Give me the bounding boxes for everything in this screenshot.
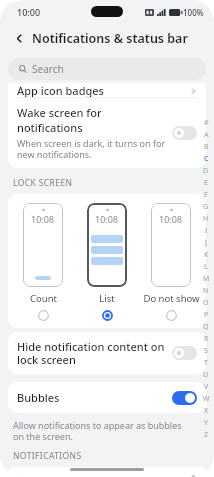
button[interactable]: Bubbles	[8, 382, 206, 413]
button[interactable]: 10:08	[78, 203, 136, 322]
staticText: M	[203, 274, 210, 284]
staticText: List	[99, 292, 115, 305]
staticText: Notifications & status bar	[32, 30, 188, 47]
staticText: F	[204, 190, 208, 200]
staticText: D	[203, 166, 209, 176]
staticText: G	[203, 202, 209, 212]
staticText: 10:08	[159, 213, 183, 225]
staticText: When screen is dark, it turns on for new…	[17, 137, 166, 160]
button[interactable]: Back	[10, 29, 28, 47]
staticText: App icon badges	[17, 83, 104, 97]
staticText: A	[204, 130, 209, 140]
staticText: O	[203, 298, 209, 308]
staticText: B	[204, 142, 209, 152]
button[interactable]: Alphabet index	[201, 117, 211, 441]
staticText: 10:08	[31, 213, 55, 225]
staticText: 10:00	[17, 6, 41, 18]
staticText: K	[204, 250, 209, 260]
staticText: U	[203, 370, 209, 380]
button[interactable]: Hide notification content on lock screen	[8, 332, 206, 374]
staticText: LOCK SCREEN	[13, 177, 73, 189]
staticText: Y	[204, 418, 208, 428]
button[interactable]: Search	[8, 58, 206, 80]
staticText: Hide notification content on lock screen	[17, 339, 166, 367]
staticText: #	[204, 118, 209, 128]
staticText: L	[204, 262, 208, 272]
staticText: P	[204, 310, 209, 320]
staticText: Wake screen for notifications	[17, 105, 166, 135]
staticText: 100%	[183, 7, 204, 18]
staticText: Q	[203, 322, 209, 332]
staticText: X	[204, 406, 209, 416]
button[interactable]: Toggle on	[172, 391, 197, 405]
staticText: J	[205, 238, 207, 248]
staticText: Do not show	[143, 292, 200, 305]
button[interactable]: Toggle off	[172, 126, 197, 140]
staticText: Count	[30, 292, 57, 305]
staticText: T	[204, 358, 208, 368]
button[interactable]: Toggle off	[172, 346, 197, 360]
staticText: Z	[204, 430, 209, 440]
staticText: S	[204, 346, 208, 356]
button[interactable]: 10:08	[142, 203, 200, 322]
staticText: V	[204, 382, 209, 392]
staticText: N	[203, 286, 209, 296]
staticText: I	[205, 226, 208, 236]
staticText: Bubbles	[17, 390, 172, 405]
staticText: NOTIFICATIONS	[13, 450, 82, 462]
staticText: 10:08	[95, 213, 119, 225]
staticText: C	[204, 154, 209, 164]
staticText: E	[204, 178, 208, 188]
button[interactable]: Manage all	[8, 467, 206, 477]
staticText: Allow notifications to appear as bubbles…	[13, 419, 192, 442]
staticText: W	[203, 394, 210, 404]
staticText: H	[203, 214, 209, 224]
button[interactable]: 10:08	[14, 203, 72, 322]
button[interactable]: Wake screen for notifications	[8, 98, 206, 168]
staticText: R	[204, 334, 209, 344]
button[interactable]: App icon badges	[8, 83, 206, 97]
staticText: Search	[32, 62, 64, 76]
